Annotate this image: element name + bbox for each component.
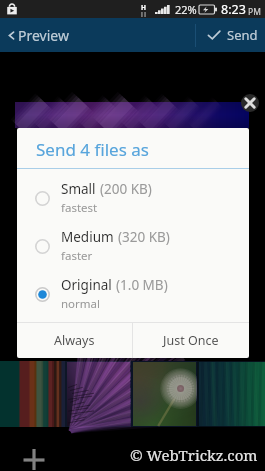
button[interactable]: Original <box>17 270 249 318</box>
staticText: (1.0 MB) <box>116 276 168 294</box>
staticText: Original <box>61 276 112 294</box>
staticText: faster <box>61 248 93 264</box>
staticText: (200 KB) <box>100 180 152 198</box>
button[interactable]: Small <box>17 174 249 222</box>
staticText: Send 4 files as <box>36 138 149 161</box>
button[interactable] <box>65 361 131 427</box>
button[interactable]: Just Once <box>133 323 249 358</box>
button[interactable]: Preview <box>0 18 77 52</box>
staticText: PM <box>248 6 261 18</box>
staticText: H <box>141 3 146 12</box>
staticText: Send <box>227 26 258 44</box>
staticText: 22% <box>175 2 197 17</box>
button[interactable] <box>131 361 197 427</box>
staticText: © WebTrickz.com <box>130 445 258 465</box>
staticText: Preview <box>18 26 69 45</box>
staticText: normal <box>61 296 100 312</box>
staticText: fastest <box>61 200 98 216</box>
staticText: (320 KB) <box>118 228 170 246</box>
staticText: Always <box>54 332 95 349</box>
button[interactable] <box>197 361 265 427</box>
button[interactable]: Medium <box>17 222 249 270</box>
button[interactable]: Always <box>17 323 132 358</box>
staticText: Just Once <box>163 332 219 349</box>
staticText: 8:23 <box>221 1 246 18</box>
staticText: Medium <box>61 228 114 246</box>
button[interactable]: Send <box>196 18 265 52</box>
staticText: Small <box>61 180 96 198</box>
button[interactable]: Add <box>20 446 48 471</box>
button[interactable] <box>0 361 65 427</box>
button[interactable]: Close <box>241 94 259 112</box>
